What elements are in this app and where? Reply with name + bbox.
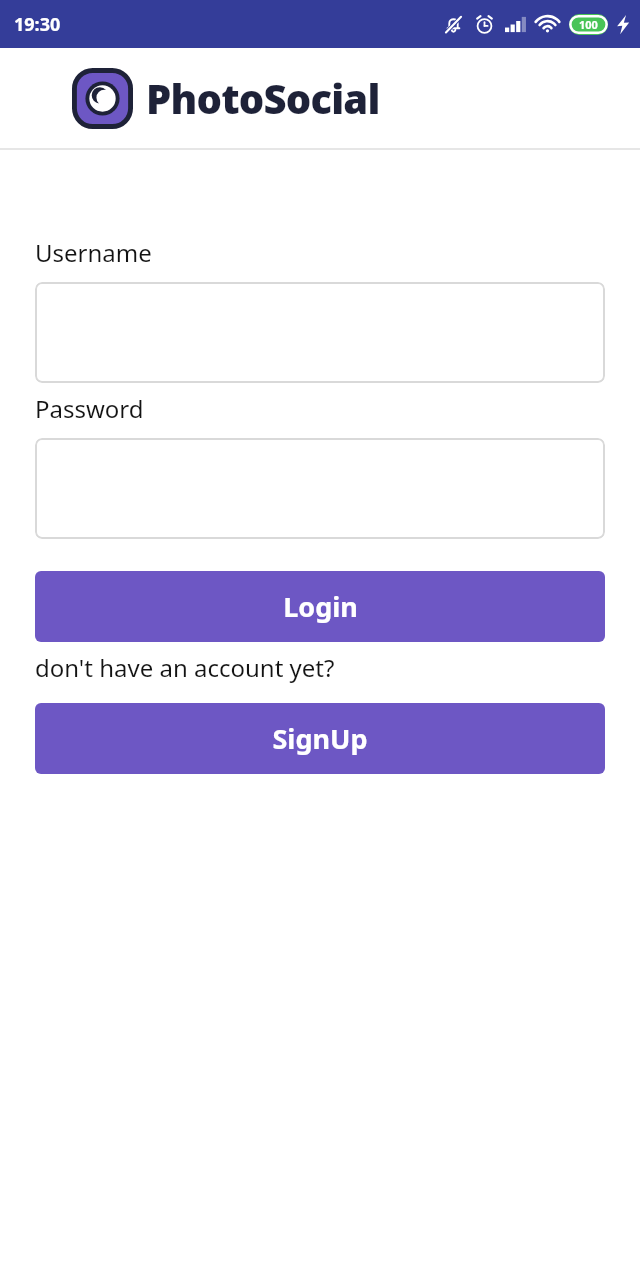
staticText: PhotoSocial — [146, 71, 380, 125]
button[interactable]: SignUp — [35, 703, 605, 774]
staticText: Password — [35, 392, 144, 425]
staticText: don't have an account yet? — [35, 651, 335, 684]
staticText: Username — [35, 236, 152, 269]
button[interactable]: Password input — [35, 438, 605, 539]
staticText: 19:30 — [14, 12, 61, 37]
staticText: SignUp — [272, 720, 368, 757]
staticText: Login — [283, 588, 358, 625]
other: PhotoSocial logo — [72, 68, 133, 129]
button[interactable]: Username input — [35, 282, 605, 383]
button[interactable]: Login — [35, 571, 605, 642]
staticText: 100 — [579, 17, 598, 32]
